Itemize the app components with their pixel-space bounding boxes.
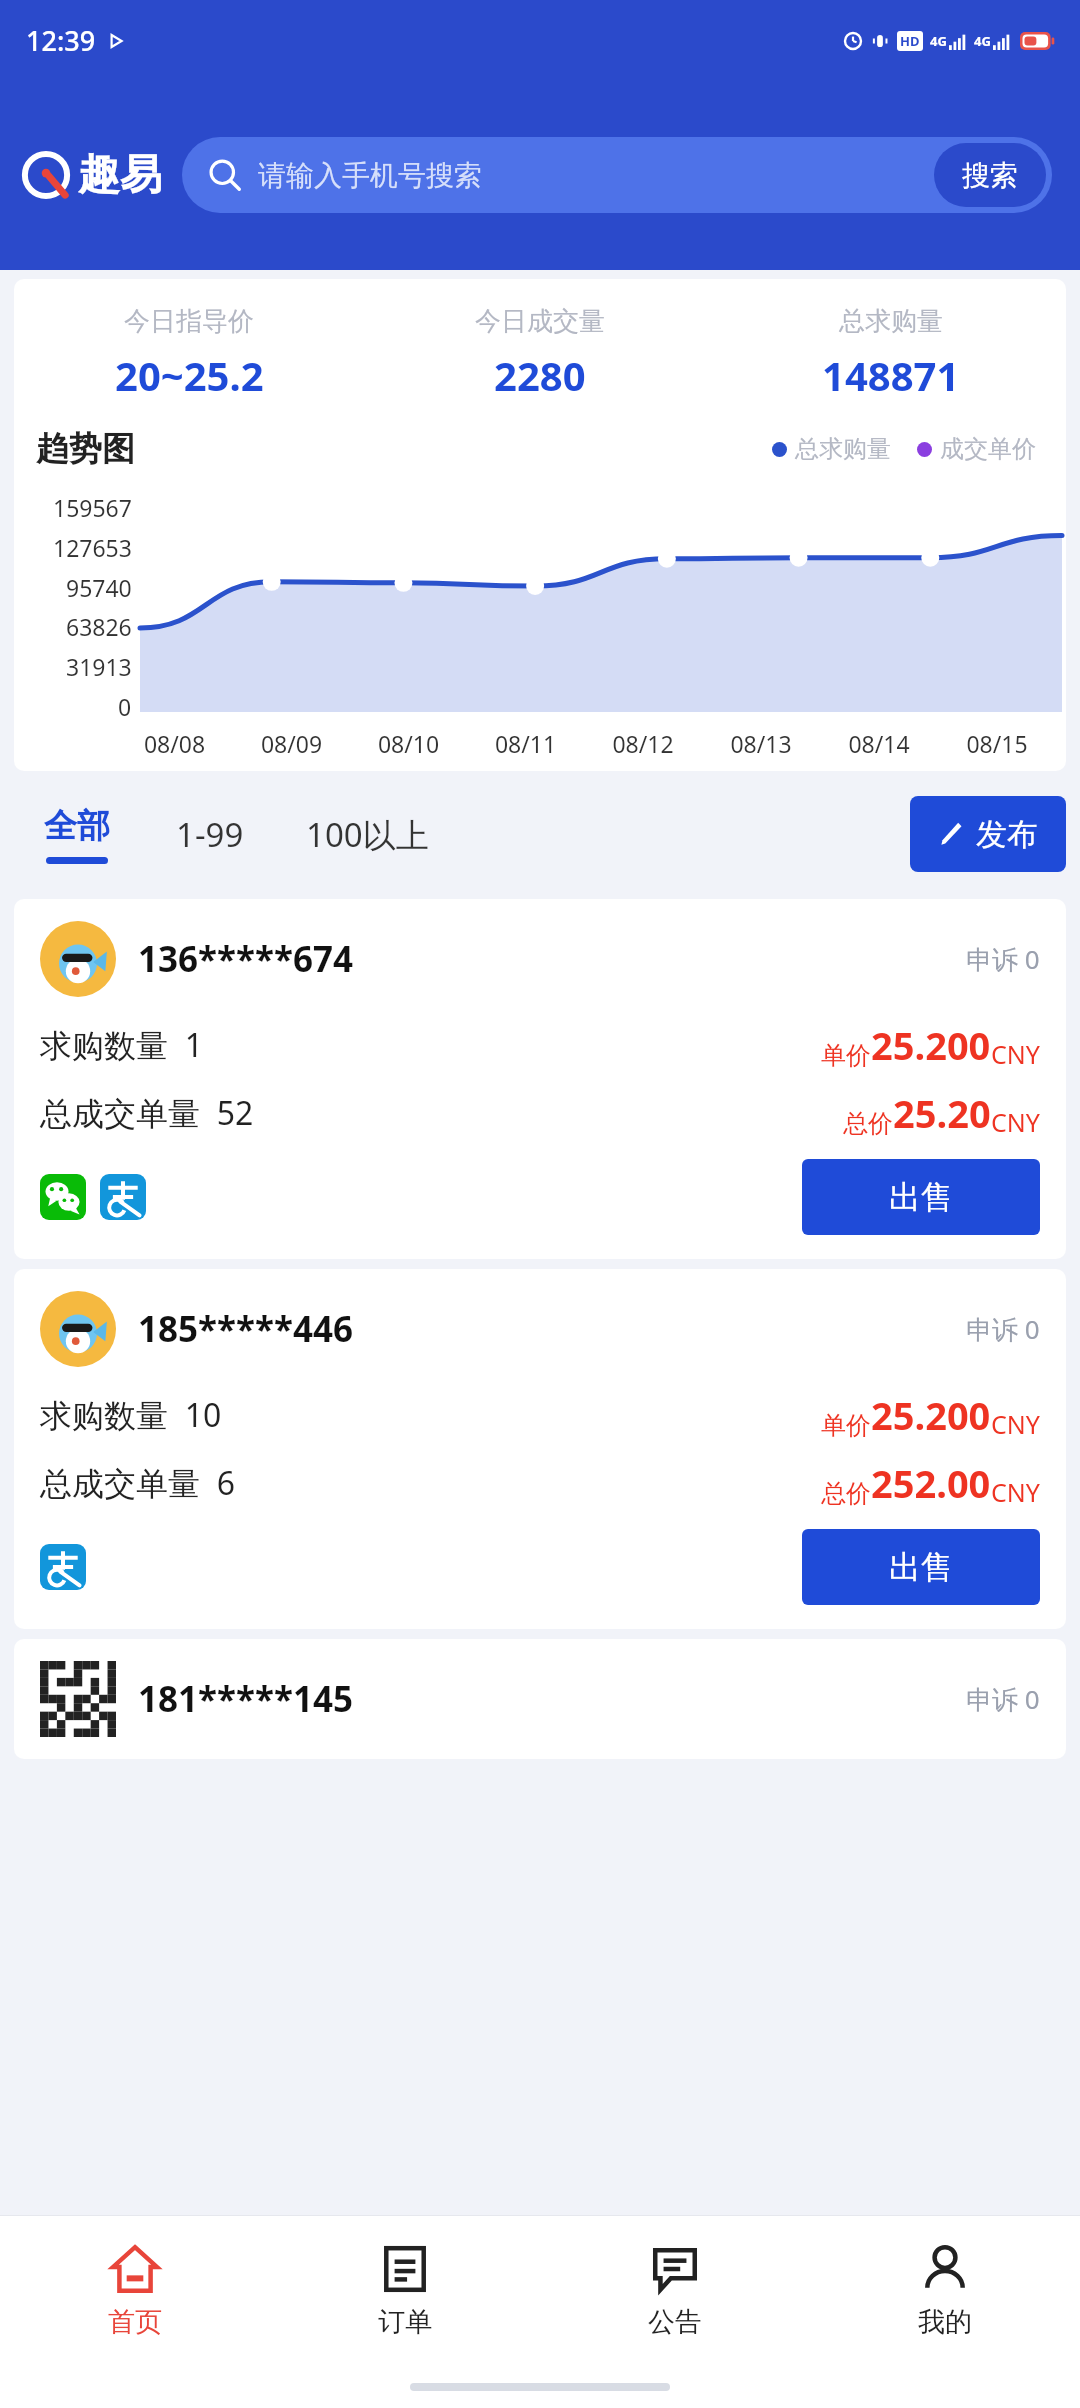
staticText: 发布 xyxy=(976,815,1038,854)
button[interactable]: WeChat Pay xyxy=(40,1174,86,1220)
staticText: 2280 xyxy=(494,348,586,402)
staticText: 总价 xyxy=(821,1478,871,1509)
button[interactable]: 搜索 xyxy=(934,143,1046,207)
staticText: 0 xyxy=(118,691,132,722)
staticText: 申诉 0 xyxy=(966,1681,1040,1717)
button[interactable]: 全部 xyxy=(14,799,140,870)
staticText: 总价 xyxy=(843,1108,893,1139)
staticText: 08/11 xyxy=(467,728,584,759)
staticText: 148871 xyxy=(822,348,960,402)
button[interactable]: 出售 xyxy=(802,1529,1040,1605)
staticText: 请输入手机号搜索 xyxy=(258,158,482,193)
staticText: 08/15 xyxy=(938,728,1056,759)
staticText: 20~25.2 xyxy=(115,348,264,402)
staticText: 出售 xyxy=(889,1547,953,1587)
button[interactable]: 公告 xyxy=(540,2216,810,2366)
staticText: 185*****446 xyxy=(138,1305,353,1353)
button[interactable]: 订单 xyxy=(270,2216,540,2366)
staticText: 单价 xyxy=(821,1410,871,1441)
button[interactable]: Alipay xyxy=(40,1544,86,1590)
staticText: 单价 xyxy=(821,1040,871,1071)
staticText: CNY xyxy=(991,1407,1040,1441)
staticText: 我的 xyxy=(918,2305,972,2339)
staticText: 订单 xyxy=(378,2305,432,2339)
staticText: 08/12 xyxy=(584,728,702,759)
staticText: 今日指导价 xyxy=(124,305,254,338)
staticText: 申诉 0 xyxy=(966,1311,1040,1347)
staticText: 25.200 xyxy=(871,1019,991,1071)
staticText: 08/14 xyxy=(820,728,938,759)
staticText: HD xyxy=(900,32,920,50)
staticText: 总成交单量 6 xyxy=(40,1461,235,1505)
staticText: 趣易 xyxy=(78,149,162,202)
button[interactable]: 136*****674 xyxy=(14,899,1066,1259)
staticText: 总成交单量 52 xyxy=(40,1091,254,1135)
staticText: 08/10 xyxy=(350,728,467,759)
staticText: 100以上 xyxy=(306,812,429,857)
staticText: 31913 xyxy=(66,651,132,682)
staticText: 首页 xyxy=(108,2305,162,2339)
staticText: 全部 xyxy=(44,805,110,847)
button[interactable]: 发布 xyxy=(910,796,1066,872)
button[interactable]: 185*****446 xyxy=(14,1269,1066,1629)
staticText: 08/08 xyxy=(116,728,233,759)
button[interactable]: 我的 xyxy=(810,2216,1080,2366)
button[interactable]: 100以上 xyxy=(296,800,439,869)
staticText: 公告 xyxy=(648,2305,702,2339)
staticText: CNY xyxy=(991,1037,1040,1071)
staticText: 出售 xyxy=(889,1177,953,1217)
staticText: 127653 xyxy=(53,532,132,563)
staticText: 总求购量 xyxy=(795,434,891,464)
button[interactable]: 1-99 xyxy=(166,800,254,869)
staticText: 趋势图 xyxy=(36,428,135,470)
staticText: CNY xyxy=(991,1105,1040,1139)
staticText: 95740 xyxy=(66,572,132,603)
button[interactable]: 181*****145 xyxy=(14,1639,1066,1759)
staticText: 申诉 0 xyxy=(966,941,1040,977)
staticText: 63826 xyxy=(66,611,132,642)
button[interactable]: Search xyxy=(182,137,1052,213)
staticText: 成交单价 xyxy=(940,434,1036,464)
staticText: 1-99 xyxy=(176,812,244,857)
staticText: 求购数量 10 xyxy=(40,1393,222,1437)
staticText: 今日成交量 xyxy=(475,305,605,338)
other: Search xyxy=(208,158,242,192)
staticText: 252.00 xyxy=(871,1457,991,1509)
staticText: 181*****145 xyxy=(138,1675,353,1723)
button[interactable]: 出售 xyxy=(802,1159,1040,1235)
button[interactable]: 首页 xyxy=(0,2216,270,2366)
staticText: 08/13 xyxy=(702,728,820,759)
staticText: CNY xyxy=(991,1475,1040,1509)
staticText: 25.20 xyxy=(893,1087,991,1139)
staticText: 搜索 xyxy=(962,158,1018,193)
button[interactable]: Alipay xyxy=(100,1174,146,1220)
staticText: 总求购量 xyxy=(839,305,943,338)
staticText: 08/09 xyxy=(233,728,350,759)
staticText: 12:39 xyxy=(26,22,96,59)
staticText: 4G xyxy=(930,32,947,50)
staticText: 4G xyxy=(974,32,991,50)
staticText: 求购数量 1 xyxy=(40,1023,203,1067)
staticText: 136*****674 xyxy=(138,935,353,983)
staticText: 25.200 xyxy=(871,1389,991,1441)
staticText: 159567 xyxy=(53,492,132,523)
